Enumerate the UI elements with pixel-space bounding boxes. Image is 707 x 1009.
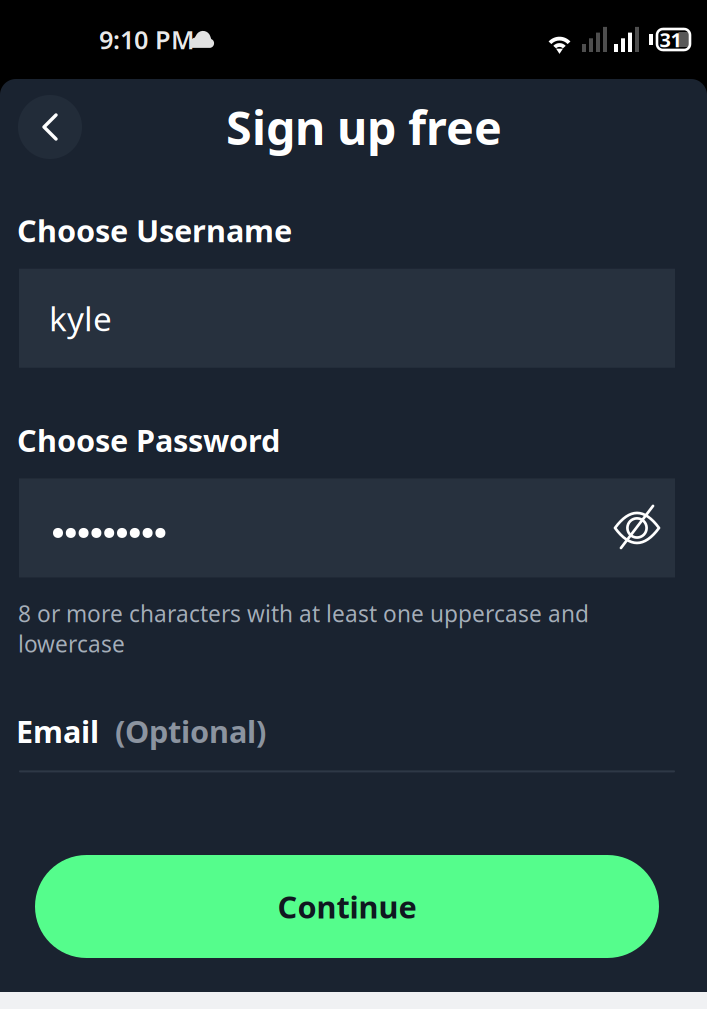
staticText: Choose Username (17, 210, 292, 251)
staticText: 31 (659, 26, 681, 53)
staticText: Sign up free (226, 96, 502, 158)
button[interactable]: Email (0, 711, 694, 772)
button[interactable]: Password field (19, 478, 599, 577)
staticText: Email (16, 711, 99, 751)
staticText: kyle (49, 296, 112, 340)
staticText: Continue (277, 886, 416, 927)
button[interactable]: Back (18, 95, 82, 159)
staticText: (Optional) (115, 711, 266, 751)
staticText: 8 or more characters with at least one u… (18, 598, 589, 659)
staticText: 9:10 PM (99, 23, 195, 56)
staticText: Choose Password (17, 420, 280, 460)
button[interactable]: kyle (19, 269, 675, 368)
button[interactable]: Continue (35, 855, 659, 958)
button[interactable]: Show password (599, 478, 675, 577)
